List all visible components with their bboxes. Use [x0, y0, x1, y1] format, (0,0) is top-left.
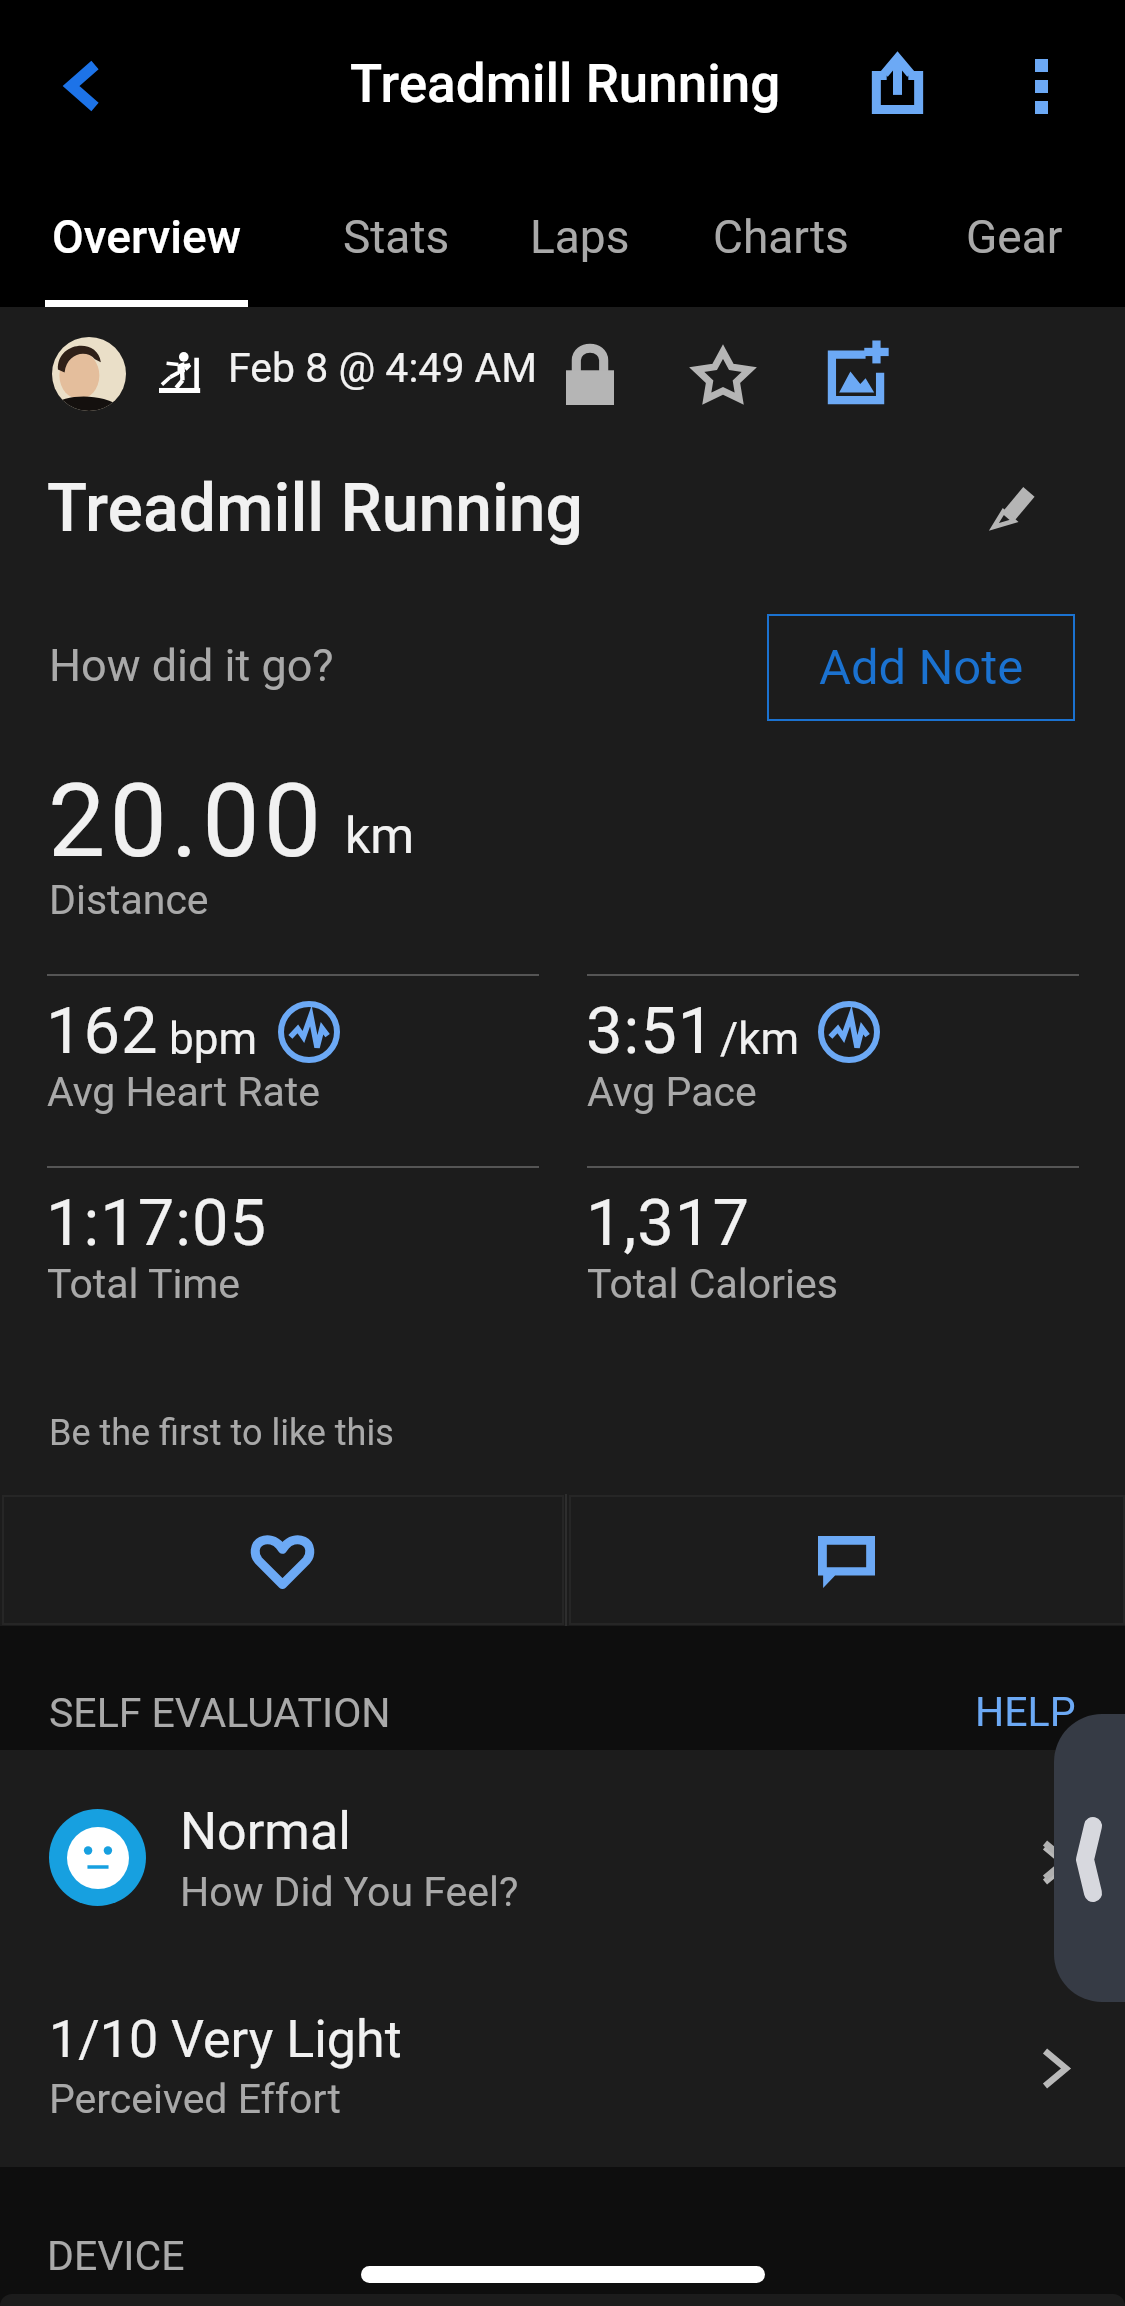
staticText: 1:17:05	[46, 1185, 268, 1261]
staticText: 20.00	[48, 761, 326, 881]
button[interactable]: Add Note	[767, 614, 1075, 721]
staticText: Avg Pace	[587, 1068, 757, 1116]
button[interactable]	[0, 1979, 1125, 2167]
button[interactable]: Gear	[935, 174, 1093, 307]
button[interactable]: Favorite	[660, 322, 752, 414]
button[interactable]: Open panel	[1054, 1714, 1125, 2002]
button[interactable]: Charts	[686, 174, 876, 307]
button[interactable]: Like	[0, 1494, 565, 1630]
button[interactable]: Laps	[505, 174, 655, 307]
staticText: Treadmill Running	[47, 470, 583, 547]
staticText: How Did You Feel?	[180, 1868, 519, 1916]
staticText: Charts	[713, 210, 849, 264]
staticText: /km	[720, 1013, 800, 1065]
staticText: 162	[46, 993, 159, 1069]
staticText: Gear	[966, 210, 1063, 264]
button[interactable]: HELP	[960, 1672, 1090, 1752]
button[interactable]: Comment	[567, 1494, 1125, 1630]
staticText: Feb 8 @ 4:49 AM	[228, 344, 538, 392]
button[interactable]: Back	[28, 40, 128, 140]
staticText: Perceived Effort	[49, 2075, 341, 2123]
staticText: Avg Heart Rate	[47, 1068, 321, 1116]
button[interactable]	[0, 1750, 1125, 1979]
button[interactable]: Add photo	[800, 318, 900, 418]
staticText: 3:51	[586, 993, 716, 1069]
staticText: Normal	[180, 1801, 351, 1862]
staticText: 1/10 Very Light	[49, 2009, 402, 2070]
staticText: Overview	[52, 210, 241, 264]
staticText: Total Calories	[587, 1260, 838, 1308]
staticText: Stats	[343, 210, 450, 264]
staticText: bpm	[169, 1013, 257, 1065]
button[interactable]: Edit title	[961, 456, 1061, 556]
staticText: Be the first to like this	[49, 1412, 394, 1454]
staticText: HELP	[975, 1688, 1076, 1736]
button[interactable]: Private activity	[545, 322, 635, 412]
button[interactable]: Stats	[318, 174, 474, 307]
button[interactable]: Share	[846, 36, 946, 136]
button[interactable]: More options	[991, 36, 1091, 136]
staticText: Total Time	[47, 1260, 241, 1308]
staticText: 1,317	[586, 1185, 750, 1261]
button[interactable]: Overview	[45, 174, 248, 307]
staticText: How did it go?	[49, 639, 334, 692]
staticText: SELF EVALUATION	[49, 1689, 391, 1737]
staticText: Treadmill Running	[350, 53, 781, 115]
staticText: Add Note	[819, 639, 1024, 696]
button[interactable]: Profile	[52, 337, 126, 411]
staticText: Laps	[530, 210, 630, 264]
staticText: Distance	[49, 876, 209, 924]
staticText: km	[345, 807, 415, 866]
staticText: DEVICE	[47, 2232, 185, 2280]
